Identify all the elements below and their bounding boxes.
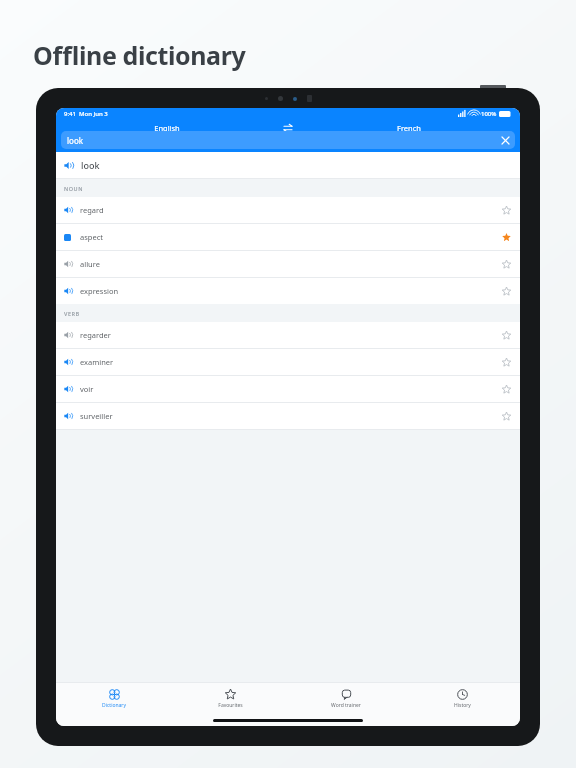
staticText: Favourites — [218, 702, 243, 709]
staticText: voir — [80, 384, 94, 394]
staticText: surveiller — [80, 411, 113, 421]
staticText: expression — [80, 286, 119, 296]
staticText: 100% — [481, 110, 497, 118]
button[interactable]: look — [61, 131, 515, 149]
button[interactable]: surveiller — [56, 403, 520, 429]
button[interactable]: aspect — [56, 224, 520, 250]
button[interactable]: Add to favourites — [496, 406, 516, 426]
button[interactable]: look — [56, 152, 520, 178]
button[interactable]: English — [56, 121, 278, 135]
button[interactable]: allure — [56, 251, 520, 277]
button[interactable]: Add to favourites — [496, 352, 516, 372]
staticText: 9:41 Mon Jun 3 — [64, 110, 108, 118]
button[interactable]: Dictionary — [56, 683, 172, 715]
button[interactable]: expression — [56, 278, 520, 304]
staticText: Dictionary — [102, 702, 126, 709]
button[interactable]: History — [404, 683, 520, 715]
button[interactable]: Add to favourites — [496, 200, 516, 220]
staticText: French — [397, 123, 421, 133]
staticText: History — [454, 702, 471, 709]
staticText: English — [154, 123, 180, 133]
button[interactable]: regard — [56, 197, 520, 223]
staticText: regard — [80, 205, 104, 215]
staticText: look — [67, 135, 84, 146]
button[interactable]: regarder — [56, 322, 520, 348]
button[interactable]: Add to favourites — [496, 254, 516, 274]
button[interactable]: Add to favourites — [496, 325, 516, 345]
staticText: allure — [80, 259, 100, 269]
staticText: regarder — [80, 330, 111, 340]
button[interactable]: voir — [56, 376, 520, 402]
button[interactable]: examiner — [56, 349, 520, 375]
staticText: VERB — [64, 310, 80, 317]
button[interactable]: Remove from favourites — [496, 227, 516, 247]
button[interactable]: Swap languages — [278, 121, 298, 135]
button[interactable]: French — [298, 121, 520, 135]
staticText: aspect — [80, 232, 103, 242]
staticText: Offline dictionary — [33, 38, 246, 72]
staticText: Word trainer — [331, 702, 361, 709]
button[interactable]: Clear search — [497, 132, 513, 148]
button[interactable]: Favourites — [172, 683, 288, 715]
staticText: look — [81, 159, 100, 171]
staticText: NOUN — [64, 185, 83, 192]
button[interactable]: Add to favourites — [496, 379, 516, 399]
staticText: examiner — [80, 357, 114, 367]
button[interactable]: Add to favourites — [496, 281, 516, 301]
button[interactable]: Word trainer — [288, 683, 404, 715]
